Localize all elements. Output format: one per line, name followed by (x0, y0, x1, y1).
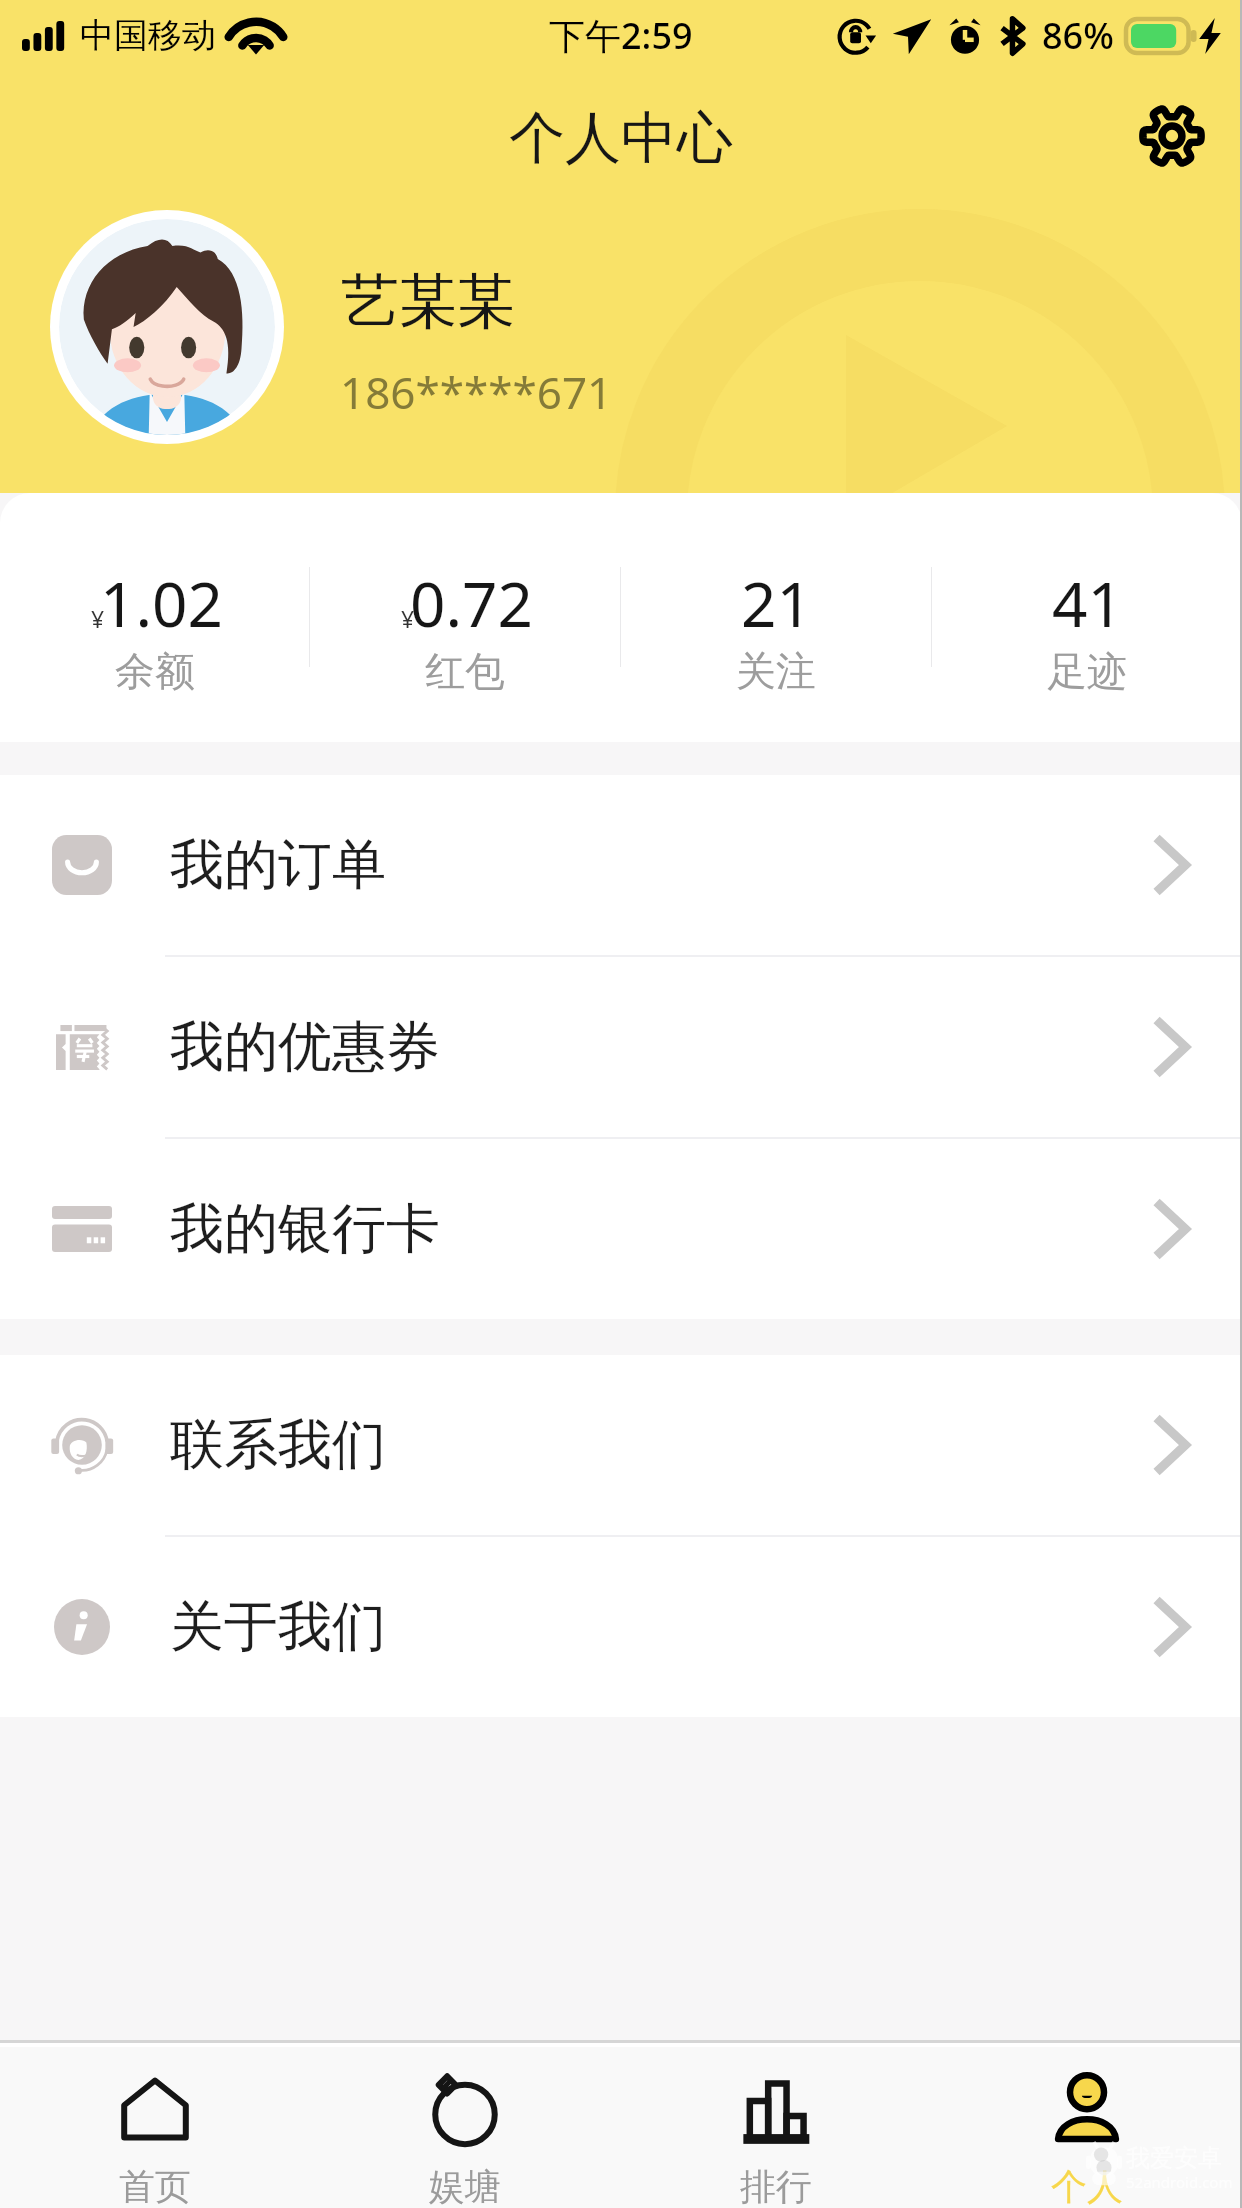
button[interactable]: 娱塘 (310, 2047, 620, 2208)
staticText: 21 (741, 561, 812, 645)
staticText: 0.72 (410, 561, 534, 645)
staticText: 关于我们 (170, 1593, 1152, 1661)
button[interactable]: Settings (1131, 95, 1213, 177)
staticText: 86% (1042, 11, 1114, 60)
staticText: 41 (1052, 561, 1123, 645)
staticText: 首页 (119, 2164, 191, 2208)
staticText: 余额 (115, 646, 195, 696)
button[interactable]: 关于我们 (0, 1537, 1242, 1717)
button[interactable]: 首页 (0, 2047, 310, 2208)
button[interactable]: 个人 (931, 2047, 1242, 2208)
staticText: 关注 (736, 646, 816, 696)
staticText: 个人 (1051, 2164, 1123, 2208)
staticText: ¥ (401, 603, 415, 634)
staticText: ¥ (91, 603, 105, 634)
staticText: 下午2:59 (549, 11, 693, 60)
button[interactable]: 排行 (620, 2047, 931, 2208)
button[interactable]: 联系我们 (0, 1355, 1242, 1535)
staticText: 足迹 (1047, 646, 1127, 696)
staticText: 娱塘 (429, 2164, 501, 2208)
staticText: 1.02 (100, 561, 224, 645)
button[interactable]: 我的银行卡 (0, 1139, 1242, 1319)
button[interactable]: ¥ (310, 561, 620, 696)
button[interactable]: 21 (621, 561, 931, 696)
staticText: 我的银行卡 (170, 1195, 1152, 1263)
staticText: 中国移动 (80, 14, 216, 57)
button[interactable]: 我的订单 (0, 775, 1242, 955)
button[interactable]: 我的优惠券 (0, 957, 1242, 1137)
staticText: 联系我们 (170, 1411, 1152, 1479)
staticText: 艺某某 (341, 265, 515, 338)
staticText: 186*****671 (340, 362, 613, 422)
staticText: 排行 (740, 2164, 812, 2208)
button[interactable]: ¥ (0, 561, 309, 696)
staticText: 红包 (425, 646, 505, 696)
button[interactable]: 41 (932, 561, 1242, 696)
staticText: 个人中心 (509, 103, 733, 174)
staticText: 我的订单 (170, 831, 1152, 899)
button[interactable]: 艺某某 (0, 198, 1242, 456)
staticText: 我的优惠券 (170, 1013, 1152, 1081)
